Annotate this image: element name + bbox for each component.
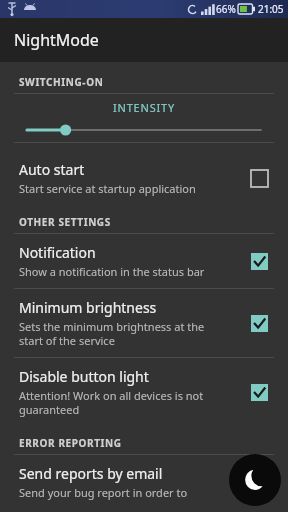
staticText: Minimum brightness <box>19 298 157 317</box>
button[interactable]: Toggle night mode <box>229 454 281 506</box>
button[interactable]: Checked <box>246 471 272 497</box>
staticText: SWITCHING-ON <box>19 75 104 89</box>
staticText: Attention! Work on all devices is not gu… <box>19 388 204 417</box>
staticText: 21:05 <box>258 2 284 16</box>
staticText: Send reports by email <box>19 464 163 483</box>
button[interactable]: Minimum brightness <box>0 289 288 357</box>
button[interactable]: Unchecked <box>246 165 272 191</box>
staticText: INTENSITY <box>113 100 175 115</box>
staticText: Show a notification in the status bar <box>19 264 205 279</box>
button[interactable]: Send reports by email <box>0 455 288 512</box>
button[interactable]: Checked <box>246 379 272 405</box>
staticText: Start service at startup application <box>19 181 196 196</box>
button[interactable]: Auto start <box>0 151 288 205</box>
staticText: ERROR REPORTING <box>19 436 122 450</box>
staticText: Auto start <box>19 160 85 179</box>
staticText: OTHER SETTINGS <box>19 215 111 229</box>
button[interactable]: Checked <box>246 248 272 274</box>
staticText: Notification <box>19 243 96 262</box>
staticText: Sets the minimum brightness at the start… <box>19 319 205 348</box>
button[interactable]: Disable button light <box>0 358 288 426</box>
button[interactable]: INTENSITY <box>0 94 288 151</box>
staticText: 66% <box>216 2 236 16</box>
button[interactable]: Checked <box>246 310 272 336</box>
staticText: Disable button light <box>19 367 149 386</box>
staticText: Send your bug report in order to improve… <box>19 485 196 503</box>
button[interactable]: Notification <box>0 234 288 288</box>
staticText: NightMode <box>14 29 99 51</box>
